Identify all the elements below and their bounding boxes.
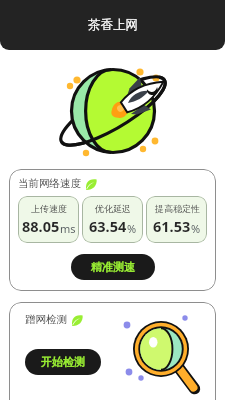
staticText: 提高稳定性 <box>155 203 200 214</box>
staticText: 蹭网检测 <box>25 313 67 326</box>
staticText: ms <box>60 221 76 236</box>
staticText: 优化延迟 <box>95 203 131 214</box>
staticText: 茶香上网 <box>88 17 138 33</box>
staticText: 88.05 <box>22 216 60 236</box>
staticText: 61.53 <box>153 216 191 236</box>
staticText: % <box>191 221 201 236</box>
button[interactable]: 上传速度 <box>18 196 79 243</box>
staticText: 精准测速 <box>91 260 135 274</box>
staticText: 63.54 <box>89 216 127 236</box>
button[interactable]: 开始检测 <box>25 349 101 375</box>
button[interactable]: 提高稳定性 <box>146 196 207 243</box>
staticText: 开始检测 <box>41 355 85 369</box>
staticText: % <box>127 221 137 236</box>
button[interactable]: 精准测速 <box>71 254 155 280</box>
staticText: 当前网络速度 <box>18 177 81 190</box>
staticText: 上传速度 <box>31 203 67 214</box>
button[interactable]: 优化延迟 <box>82 196 143 243</box>
